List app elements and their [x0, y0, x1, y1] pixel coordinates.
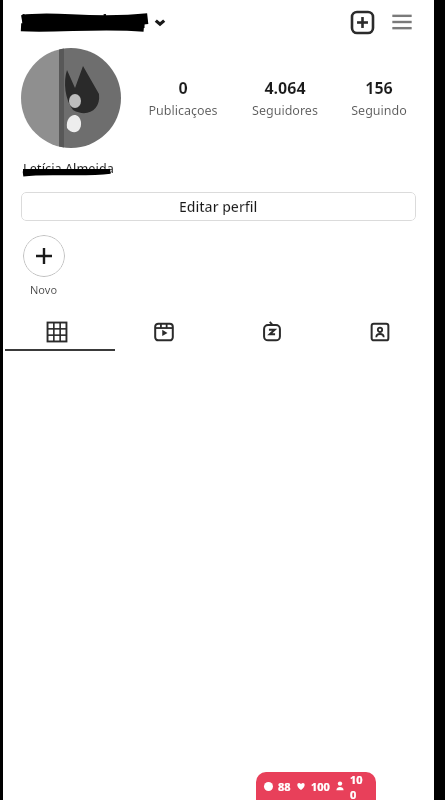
button[interactable]: kathasse.bundaa	[21, 10, 342, 34]
button[interactable]: 156	[345, 75, 413, 121]
staticText: Letícia Almeida	[23, 160, 114, 177]
staticText: 100	[350, 772, 368, 800]
button[interactable]: New highlight	[23, 235, 65, 297]
button[interactable]: Grid	[3, 315, 110, 349]
button[interactable]: Editar perfil	[21, 192, 416, 221]
staticText: kathasse.bundaa	[21, 10, 149, 34]
button[interactable]: 0	[142, 75, 224, 121]
button[interactable]: IGTV	[218, 315, 326, 349]
staticText: Novo	[30, 282, 58, 297]
staticText: Seguidores	[252, 102, 318, 119]
staticText: Publicaçoes	[148, 102, 218, 119]
button[interactable]: 88	[264, 772, 368, 800]
button[interactable]: New post	[342, 2, 382, 42]
staticText: 156	[365, 77, 393, 99]
staticText: 88	[278, 779, 291, 794]
button[interactable]: Profile photo	[21, 48, 121, 148]
button[interactable]: Tagged	[326, 315, 434, 349]
staticText: 4.064	[264, 77, 306, 99]
staticText: Editar perfil	[179, 197, 258, 216]
staticText: 100	[311, 779, 330, 794]
staticText: 0	[178, 77, 188, 99]
staticText: Seguindo	[351, 102, 407, 119]
button[interactable]: Reels	[110, 315, 218, 349]
button[interactable]: 4.064	[246, 75, 324, 121]
button[interactable]: Menu	[382, 2, 422, 42]
